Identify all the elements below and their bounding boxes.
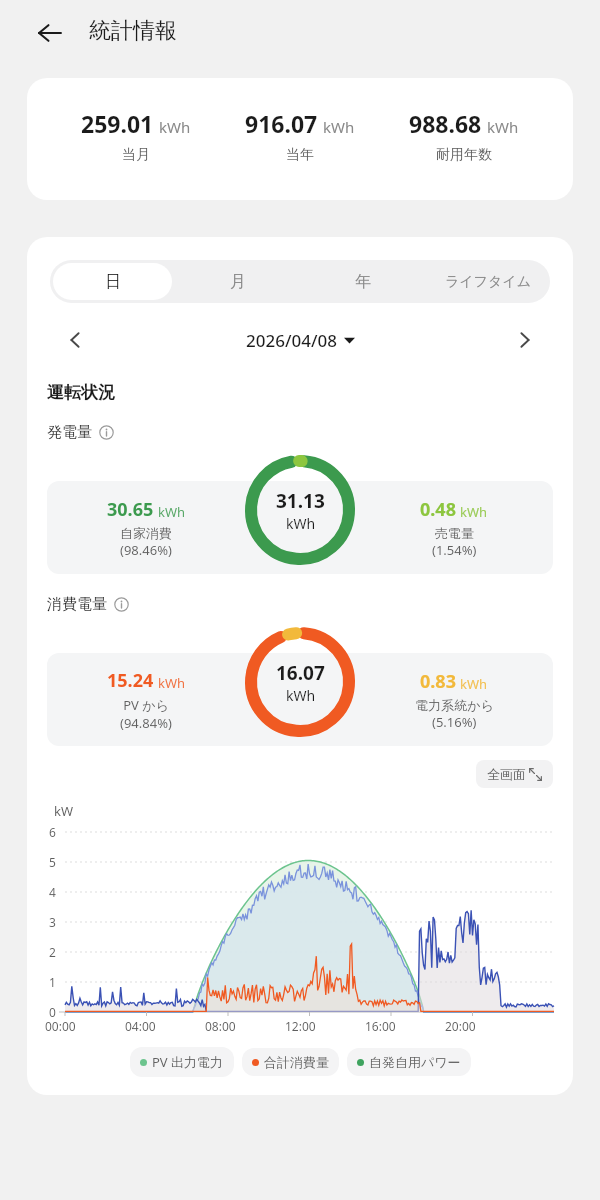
staticText: kWh: [487, 117, 519, 137]
button[interactable]: ライフタイム: [428, 263, 547, 300]
button[interactable]: 2026/04/08: [246, 329, 355, 352]
button[interactable]: 日: [53, 263, 172, 300]
button[interactable]: 発電量: [47, 423, 114, 442]
button[interactable]: 合計消費量: [242, 1048, 339, 1076]
staticText: 0.83: [420, 669, 456, 694]
staticText: 合計消費量: [264, 1054, 329, 1070]
staticText: (1.54%): [432, 541, 477, 559]
button[interactable]: Next: [507, 322, 543, 358]
button[interactable]: PV 出力電力: [130, 1047, 234, 1077]
staticText: kWh: [158, 674, 186, 692]
staticText: 15.24: [107, 668, 154, 693]
staticText: 売電量: [435, 525, 474, 541]
staticText: 12:00: [285, 1018, 316, 1034]
button[interactable]: 年: [303, 263, 422, 300]
staticText: 月: [230, 272, 246, 292]
staticText: kWh: [323, 117, 355, 137]
staticText: 日: [105, 272, 121, 292]
staticText: 当月: [122, 146, 150, 164]
button[interactable]: Back: [29, 12, 71, 54]
staticText: 年: [355, 272, 371, 292]
staticText: 2: [49, 944, 56, 960]
staticText: 耐用年数: [436, 146, 492, 164]
staticText: 全画面: [487, 766, 526, 782]
button[interactable]: 月: [178, 263, 297, 300]
staticText: 20:00: [445, 1018, 476, 1034]
staticText: kWh: [158, 503, 186, 521]
staticText: 統計情報: [89, 17, 177, 45]
staticText: 2026/04/08: [246, 329, 337, 352]
staticText: 1: [49, 974, 56, 990]
staticText: 00:00: [45, 1018, 76, 1034]
staticText: 4: [49, 884, 56, 900]
staticText: 916.07: [245, 108, 318, 139]
staticText: 16.07: [276, 660, 325, 686]
staticText: kWh: [460, 503, 488, 521]
staticText: kW: [54, 802, 74, 820]
button[interactable]: Previous: [57, 322, 93, 358]
staticText: kWh: [286, 686, 316, 705]
staticText: 08:00: [205, 1018, 236, 1034]
staticText: PV から: [123, 696, 169, 714]
staticText: 0.48: [420, 497, 456, 522]
staticText: 259.01: [81, 108, 154, 139]
staticText: 電力系統から: [415, 697, 494, 713]
staticText: kWh: [286, 514, 316, 533]
staticText: (5.16%): [432, 713, 477, 731]
staticText: 16:00: [365, 1018, 396, 1034]
staticText: 30.65: [107, 497, 154, 522]
staticText: 31.13: [276, 488, 325, 514]
staticText: 自家消費: [120, 525, 172, 541]
staticText: 消費電量: [47, 595, 107, 614]
staticText: kWh: [460, 675, 488, 693]
button[interactable]: 自発自用パワー: [347, 1048, 471, 1076]
button[interactable]: 全画面: [476, 760, 553, 788]
staticText: 0: [49, 1004, 56, 1020]
staticText: 運転状況: [47, 382, 115, 403]
staticText: PV 出力電力: [152, 1053, 224, 1071]
staticText: (94.84%): [120, 714, 172, 732]
staticText: 6: [49, 824, 56, 840]
staticText: 当年: [286, 146, 314, 164]
staticText: 5: [49, 854, 56, 870]
staticText: 発電量: [47, 423, 92, 442]
staticText: kWh: [159, 117, 191, 137]
staticText: ライフタイム: [445, 273, 531, 291]
staticText: 3: [49, 914, 56, 930]
button[interactable]: 消費電量: [47, 595, 129, 614]
staticText: 988.68: [409, 108, 482, 139]
staticText: 自発自用パワー: [369, 1054, 461, 1070]
staticText: (98.46%): [120, 541, 172, 559]
staticText: 04:00: [125, 1018, 156, 1034]
